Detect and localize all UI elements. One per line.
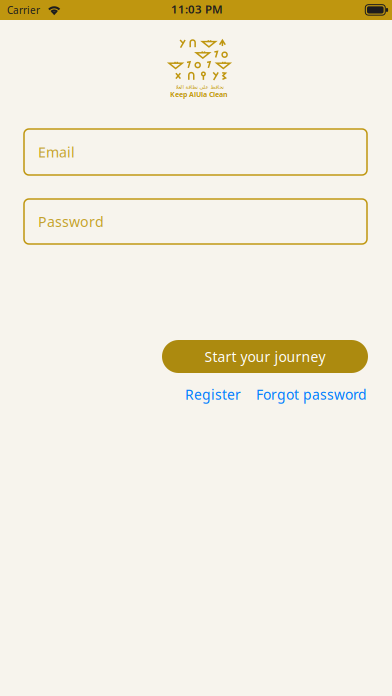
staticText: نحافظ على نظافة العلا: [175, 84, 223, 90]
staticText: 11:03 PM: [171, 1, 223, 17]
staticText: Password: [38, 212, 104, 231]
staticText: Register: [185, 385, 241, 404]
staticText: Forgot password: [256, 385, 367, 404]
button[interactable]: Start your journey: [162, 340, 368, 373]
staticText: Carrier: [7, 3, 40, 17]
staticText: Keep AlUla Clean: [170, 89, 228, 99]
button[interactable]: Register: [185, 385, 241, 404]
staticText: Start your journey: [204, 347, 325, 366]
button[interactable]: Forgot password: [256, 385, 367, 404]
staticText: Email: [38, 142, 75, 162]
